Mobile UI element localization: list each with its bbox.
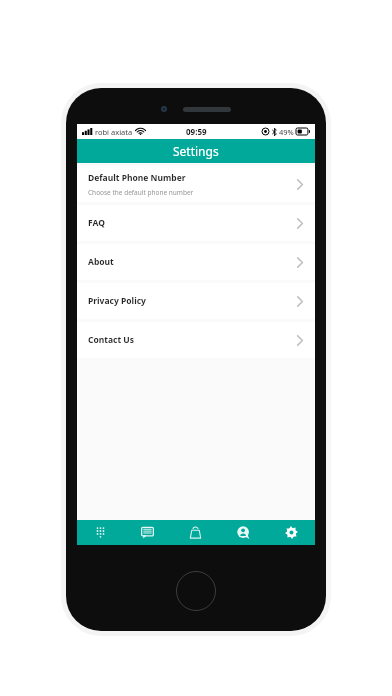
button[interactable]: About xyxy=(77,244,315,280)
button[interactable]: Dialpad xyxy=(77,520,124,545)
button[interactable]: Privacy Policy xyxy=(77,283,315,319)
button[interactable]: Settings xyxy=(267,520,315,545)
staticText: FAQ xyxy=(88,217,105,229)
staticText: robi axiata xyxy=(95,127,133,137)
button[interactable]: Default Phone Number xyxy=(77,166,315,202)
button[interactable]: Shop xyxy=(171,520,219,545)
staticText: Contact Us xyxy=(88,334,135,346)
staticText: Settings xyxy=(173,143,219,159)
staticText: 09:59 xyxy=(186,126,207,137)
button[interactable]: Messages xyxy=(124,520,171,545)
staticText: Default Phone Number xyxy=(88,172,186,184)
staticText: About xyxy=(88,256,114,268)
button[interactable]: Contact Us xyxy=(77,322,315,358)
staticText: Choose the default phone number xyxy=(88,188,194,197)
button[interactable]: FAQ xyxy=(77,205,315,241)
staticText: 49% xyxy=(279,127,294,137)
staticText: Privacy Policy xyxy=(88,295,146,307)
button[interactable]: Contacts xyxy=(219,520,267,545)
